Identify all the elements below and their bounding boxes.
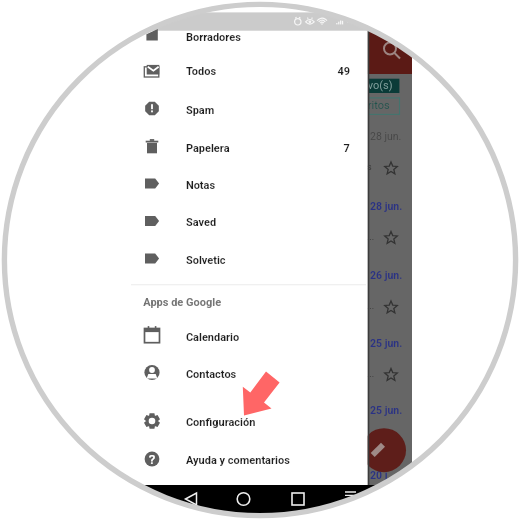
button[interactable]: Home: [228, 486, 260, 512]
button[interactable]: Saved: [130, 203, 368, 240]
button[interactable]: Contactos: [130, 354, 368, 391]
button[interactable]: Back: [178, 486, 210, 512]
button[interactable]: Ayuda y comentarios: [130, 441, 368, 478]
button[interactable]: Recents: [282, 486, 314, 512]
button[interactable]: Todos: [130, 52, 368, 89]
button[interactable]: Solvetic: [130, 240, 368, 277]
button[interactable]: Borradores: [130, 18, 368, 55]
button[interactable]: Configuración: [130, 403, 368, 440]
button[interactable]: Search: [378, 36, 408, 66]
button[interactable]: Papelera: [130, 128, 368, 165]
button[interactable]: Spam: [130, 90, 368, 127]
button[interactable]: Notas: [130, 165, 368, 202]
button[interactable]: Calendario: [130, 317, 368, 354]
button[interactable]: Compose: [363, 428, 407, 472]
